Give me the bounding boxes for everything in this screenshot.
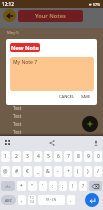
button[interactable]: 9: [84, 151, 92, 162]
button[interactable]: Back: [3, 9, 16, 22]
staticText: ;: [62, 183, 64, 190]
button[interactable]: *: [17, 181, 26, 191]
staticText: #: [15, 168, 19, 175]
staticText: =\<: [5, 184, 11, 189]
button[interactable]: ABC: [1, 195, 16, 205]
staticText: Test: [13, 113, 22, 119]
staticText: ,: [21, 197, 23, 204]
staticText: @: [3, 168, 8, 175]
staticText: *: [20, 183, 23, 190]
staticText: 4: [37, 153, 40, 160]
staticText: CANCEL: [59, 94, 75, 99]
button[interactable]: @: [1, 166, 10, 177]
button[interactable]: Voice input: [91, 138, 100, 147]
button[interactable]: CANCEL: [58, 93, 76, 100]
button[interactable]: Enter: [85, 193, 99, 207]
staticText: Test: [13, 105, 22, 111]
staticText: +: [67, 168, 70, 175]
button[interactable]: 4: [34, 151, 42, 162]
button[interactable]: Your Notes: [18, 10, 83, 22]
staticText: 5: [47, 153, 50, 160]
staticText: !: [72, 183, 74, 190]
staticText: Test: [13, 129, 22, 135]
button[interactable]: !: [69, 181, 77, 191]
staticText: 7: [67, 153, 70, 160]
button[interactable]: 0: [94, 151, 102, 162]
staticText: Your Notes: [35, 12, 66, 20]
staticText: ): [87, 168, 89, 175]
button[interactable]: ,: [18, 195, 26, 205]
staticText: 2: [15, 153, 18, 160]
staticText: 0: [97, 153, 100, 160]
button[interactable]: ': [39, 181, 47, 191]
button[interactable]: 7: [64, 151, 72, 162]
staticText: 1 2: [30, 196, 34, 200]
staticText: 3: [26, 153, 29, 160]
staticText: 1: [4, 153, 7, 160]
button[interactable]: #: [12, 166, 21, 177]
staticText: ABC: [5, 198, 12, 203]
button[interactable]: =\<: [1, 181, 15, 191]
button[interactable]: 6: [54, 151, 62, 162]
button[interactable]: SAVE: [80, 93, 92, 100]
staticText: Test: [13, 121, 22, 127]
button[interactable]: +: [64, 166, 72, 177]
staticText: _: [37, 168, 40, 175]
staticText: 9: [87, 153, 90, 160]
button[interactable]: -: [54, 166, 62, 177]
staticText: /: [97, 168, 99, 175]
staticText: -: [57, 168, 59, 175]
staticText: 3 4: [30, 200, 34, 204]
button[interactable]: 3: [23, 151, 32, 162]
staticText: SAVE: [81, 94, 91, 99]
button[interactable]: ;: [59, 181, 67, 191]
button[interactable]: 8: [74, 151, 82, 162]
staticText: New Note: [11, 44, 39, 52]
button[interactable]: My Note 7: [10, 57, 94, 91]
button[interactable]: /: [94, 166, 102, 177]
button[interactable]: 1: [1, 151, 10, 162]
staticText: ': [42, 183, 44, 190]
staticText: My Note 7: [13, 59, 37, 66]
button[interactable]: Backspace: [89, 181, 102, 191]
button[interactable]: €: [23, 166, 32, 177]
button[interactable]: Switch keyboard: [3, 138, 12, 147]
staticText: &: [46, 168, 50, 175]
staticText: 57%: [93, 2, 101, 7]
button[interactable]: 2: [12, 151, 21, 162]
button[interactable]: ): [84, 166, 92, 177]
button[interactable]: _: [34, 166, 42, 177]
button[interactable]: :: [49, 181, 57, 191]
staticText: ": [31, 183, 34, 190]
staticText: .: [70, 197, 72, 204]
staticText: May 5: [7, 30, 19, 36]
button[interactable]: Add note: [82, 116, 98, 132]
staticText: :: [52, 183, 54, 190]
button[interactable]: Share: [47, 138, 56, 147]
staticText: (: [77, 168, 79, 175]
button[interactable]: .: [67, 195, 75, 205]
button[interactable]: ": [28, 181, 37, 191]
button[interactable]: (: [74, 166, 82, 177]
button[interactable]: &: [44, 166, 52, 177]
button[interactable]: 5: [44, 151, 52, 162]
button[interactable]: ?: [79, 181, 87, 191]
button[interactable]: 1 2: [28, 195, 36, 205]
staticText: 6: [57, 153, 60, 160]
staticText: 8: [77, 153, 80, 160]
staticText: 12:12: [2, 1, 14, 7]
staticText: FR • EN: [46, 198, 57, 202]
button[interactable]: FR • EN: [38, 195, 65, 205]
staticText: €: [26, 168, 29, 175]
staticText: ?: [82, 183, 85, 190]
